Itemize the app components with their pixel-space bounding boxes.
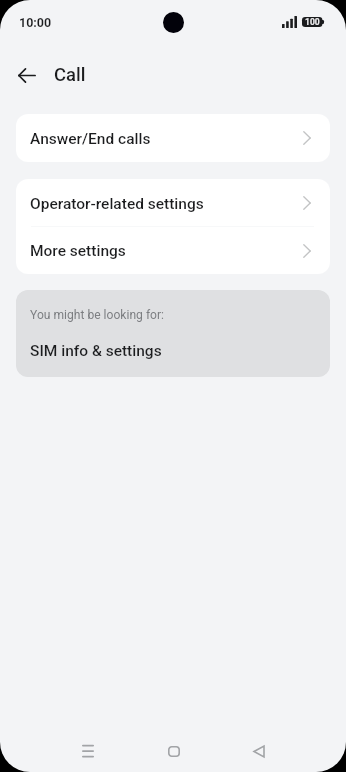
button[interactable]: Back <box>217 730 303 772</box>
staticText: More settings <box>30 242 126 260</box>
staticText: Answer/End calls <box>30 130 151 148</box>
button[interactable]: More settings <box>16 227 330 274</box>
button[interactable]: Answer/End calls <box>16 114 330 162</box>
staticText: You might be looking for: <box>30 308 165 322</box>
staticText: Call <box>54 64 86 86</box>
button[interactable]: Operator-related settings <box>16 179 330 226</box>
button[interactable]: Recent apps <box>45 730 131 772</box>
staticText: Operator-related settings <box>30 195 204 213</box>
button[interactable]: Back <box>7 55 47 95</box>
staticText: SIM info & settings <box>30 342 162 360</box>
staticText: 10:00 <box>19 15 52 30</box>
button[interactable]: You might be looking for: <box>16 290 330 377</box>
button[interactable]: Home <box>131 730 217 772</box>
staticText: 100 <box>305 17 320 27</box>
